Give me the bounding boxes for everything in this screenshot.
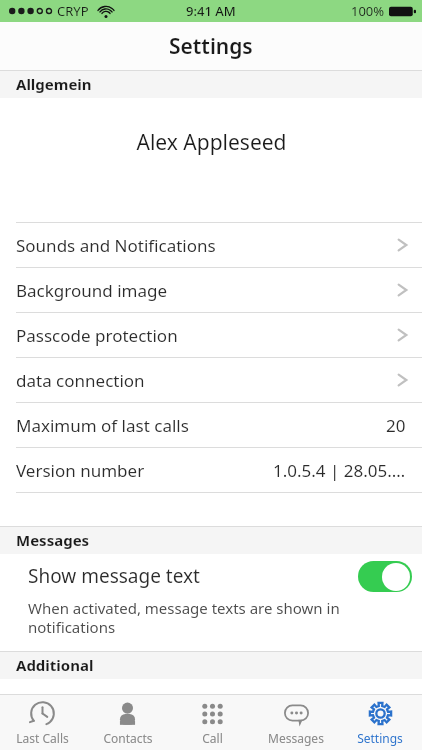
staticText: 9:41 AM	[186, 2, 236, 20]
staticText: 20	[386, 414, 406, 437]
button[interactable]: Sounds and Notifications	[0, 223, 422, 267]
staticText: Messages	[268, 730, 324, 746]
staticText: Maximum of last calls	[16, 414, 386, 437]
staticText: 100%	[351, 2, 385, 20]
button[interactable]: Call	[170, 695, 254, 750]
staticText: Messages	[16, 530, 90, 550]
staticText: Version number	[16, 459, 273, 482]
button[interactable]: Last Calls	[0, 695, 85, 750]
staticText: Passcode protection	[16, 324, 397, 347]
button[interactable]: Show message text	[0, 554, 422, 651]
other: Show message text toggle, on	[358, 561, 412, 592]
staticText: Allgemein	[16, 74, 92, 94]
staticText: Additional	[16, 655, 94, 675]
staticText: Background image	[16, 279, 397, 302]
button[interactable]: Alex Appleseed	[0, 98, 422, 222]
staticText: Contacts	[103, 730, 153, 746]
staticText: Settings	[357, 730, 403, 746]
staticText: 1.0.5.4 | 28.05.…	[273, 459, 406, 482]
button[interactable]: Maximum of last calls	[0, 403, 422, 447]
staticText: Show message text	[28, 563, 358, 589]
button[interactable]: data connection	[0, 358, 422, 402]
button[interactable]: Settings	[338, 695, 422, 750]
staticText: Last Calls	[16, 730, 69, 746]
staticText: Call	[202, 730, 223, 746]
button[interactable]: Version number	[0, 448, 422, 492]
button[interactable]: Background image	[0, 268, 422, 312]
staticText: Alex Appleseed	[136, 128, 287, 157]
staticText: data connection	[16, 369, 397, 392]
button[interactable]: Passcode protection	[0, 313, 422, 357]
staticText: Sounds and Notifications	[16, 234, 397, 257]
staticText: CRYP	[57, 2, 89, 20]
button[interactable]: Contacts	[85, 695, 170, 750]
button[interactable]: Messages	[254, 695, 338, 750]
staticText: When activated, message texts are shown …	[28, 598, 340, 637]
staticText: Settings	[169, 32, 253, 61]
